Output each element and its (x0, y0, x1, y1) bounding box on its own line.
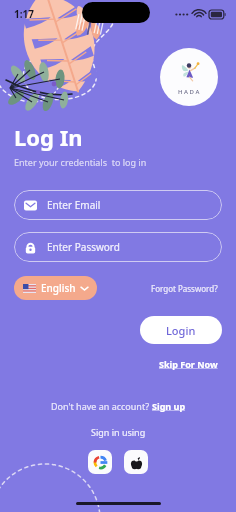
staticText: Sign up (152, 400, 186, 412)
staticText: Enter your credentials to log in (14, 156, 147, 168)
staticText: Sign in using (91, 426, 146, 438)
button[interactable]: English (14, 276, 97, 300)
button[interactable]: Sign up (152, 400, 186, 412)
staticText: Don't have an account? (51, 400, 152, 412)
staticText: Enter Password (47, 240, 120, 254)
button[interactable]: Enter Password (14, 232, 222, 262)
button[interactable]: Sign in with Google (88, 450, 112, 474)
button[interactable]: Skip For Now (155, 356, 222, 372)
staticText: Log In (14, 122, 83, 152)
button[interactable]: Forgot Password? (147, 279, 222, 298)
staticText: Skip For Now (159, 358, 218, 370)
button[interactable]: Enter Email (14, 190, 222, 220)
staticText: Login (166, 323, 196, 338)
button[interactable]: HADA logo (160, 48, 218, 106)
staticText: English (41, 281, 76, 295)
staticText: Enter Email (47, 198, 101, 212)
staticText: 1:17 (14, 7, 34, 21)
staticText: Forgot Password? (151, 283, 218, 294)
button[interactable]: Sign in with Apple (124, 450, 148, 474)
button[interactable]: Login (140, 316, 222, 344)
staticText: H A D A (178, 88, 200, 96)
